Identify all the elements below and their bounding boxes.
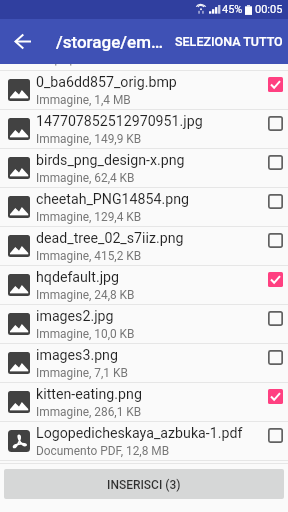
button[interactable]: 0_ba6dd857_orig.bmp: [0, 71, 288, 109]
button[interactable]: Select birds_png_design-x.png: [258, 149, 288, 187]
staticText: Logopedicheskaya_azbuka-1.pdf: [36, 425, 243, 442]
staticText: Immagine, 415,2 KB: [36, 249, 142, 263]
button[interactable]: SELEZIONA TUTTO: [167, 22, 288, 61]
staticText: Immagine, 1,4 MB: [36, 93, 131, 107]
button[interactable]: kitten-eating.png: [0, 383, 288, 421]
staticText: Documento PDF, 12,8 MB: [36, 444, 170, 458]
staticText: dead_tree_02_s7iiz.png: [36, 230, 184, 247]
staticText: images3.png: [36, 347, 118, 364]
staticText: cheetah_PNG14854.png: [36, 191, 189, 208]
button[interactable]: Back: [0, 19, 45, 64]
staticText: Immagine, 129,4 KB: [36, 210, 142, 224]
button[interactable]: images3.png: [0, 344, 288, 382]
button[interactable]: Select 0_ba6dd857_orig.bmp: [258, 71, 288, 109]
button[interactable]: Select hqdefault.jpg: [258, 266, 288, 304]
staticText: INSERISCI (3): [107, 478, 181, 492]
staticText: Immagine, 62,4 KB: [36, 171, 135, 185]
button[interactable]: Logopedicheskaya_azbuka-1.pdf: [0, 422, 288, 460]
button[interactable]: cheetah_PNG14854.png: [0, 188, 288, 226]
button[interactable]: Select 147707852512970951.jpg: [258, 110, 288, 148]
staticText: 45%: [222, 3, 243, 16]
button[interactable]: Select dead_tree_02_s7iiz.png: [258, 227, 288, 265]
staticText: 147707852512970951.jpg: [36, 113, 203, 130]
staticText: images2.jpg: [36, 308, 114, 325]
button[interactable]: dead_tree_02_s7iiz.png: [0, 227, 288, 265]
staticText: /storage/em…: [56, 32, 163, 52]
staticText: Immagine, 10,0 KB: [36, 327, 135, 341]
staticText: 00:05: [255, 3, 283, 16]
staticText: hqdefault.jpg: [36, 269, 120, 286]
staticText: Immagine, 7,1 KB: [36, 366, 128, 380]
button[interactable]: 147707852512970951.jpg: [0, 110, 288, 148]
button[interactable]: Select images3.png: [258, 344, 288, 382]
staticText: SELEZIONA TUTTO: [175, 34, 283, 49]
staticText: kitten-eating.png: [36, 386, 142, 403]
staticText: Immagine, 149,9 KB: [36, 132, 142, 146]
button[interactable]: Select images2.jpg: [258, 305, 288, 343]
button[interactable]: birds_png_design-x.png: [0, 149, 288, 187]
staticText: Immagine, 286,1 KB: [36, 405, 142, 419]
button[interactable]: Select cheetah_PNG14854.png: [258, 188, 288, 226]
staticText: birds_png_design-x.png: [36, 152, 185, 169]
button[interactable]: Select kitten-eating.png: [258, 383, 288, 421]
button[interactable]: images2.jpg: [0, 305, 288, 343]
button[interactable]: Select Logopedicheskaya_azbuka-1.pdf: [258, 422, 288, 460]
staticText: Immagine, 24,8 KB: [36, 288, 135, 302]
staticText: 0_ba6dd857_orig.bmp: [36, 74, 177, 91]
button[interactable]: INSERISCI (3): [4, 469, 284, 499]
button[interactable]: hqdefault.jpg: [0, 266, 288, 304]
